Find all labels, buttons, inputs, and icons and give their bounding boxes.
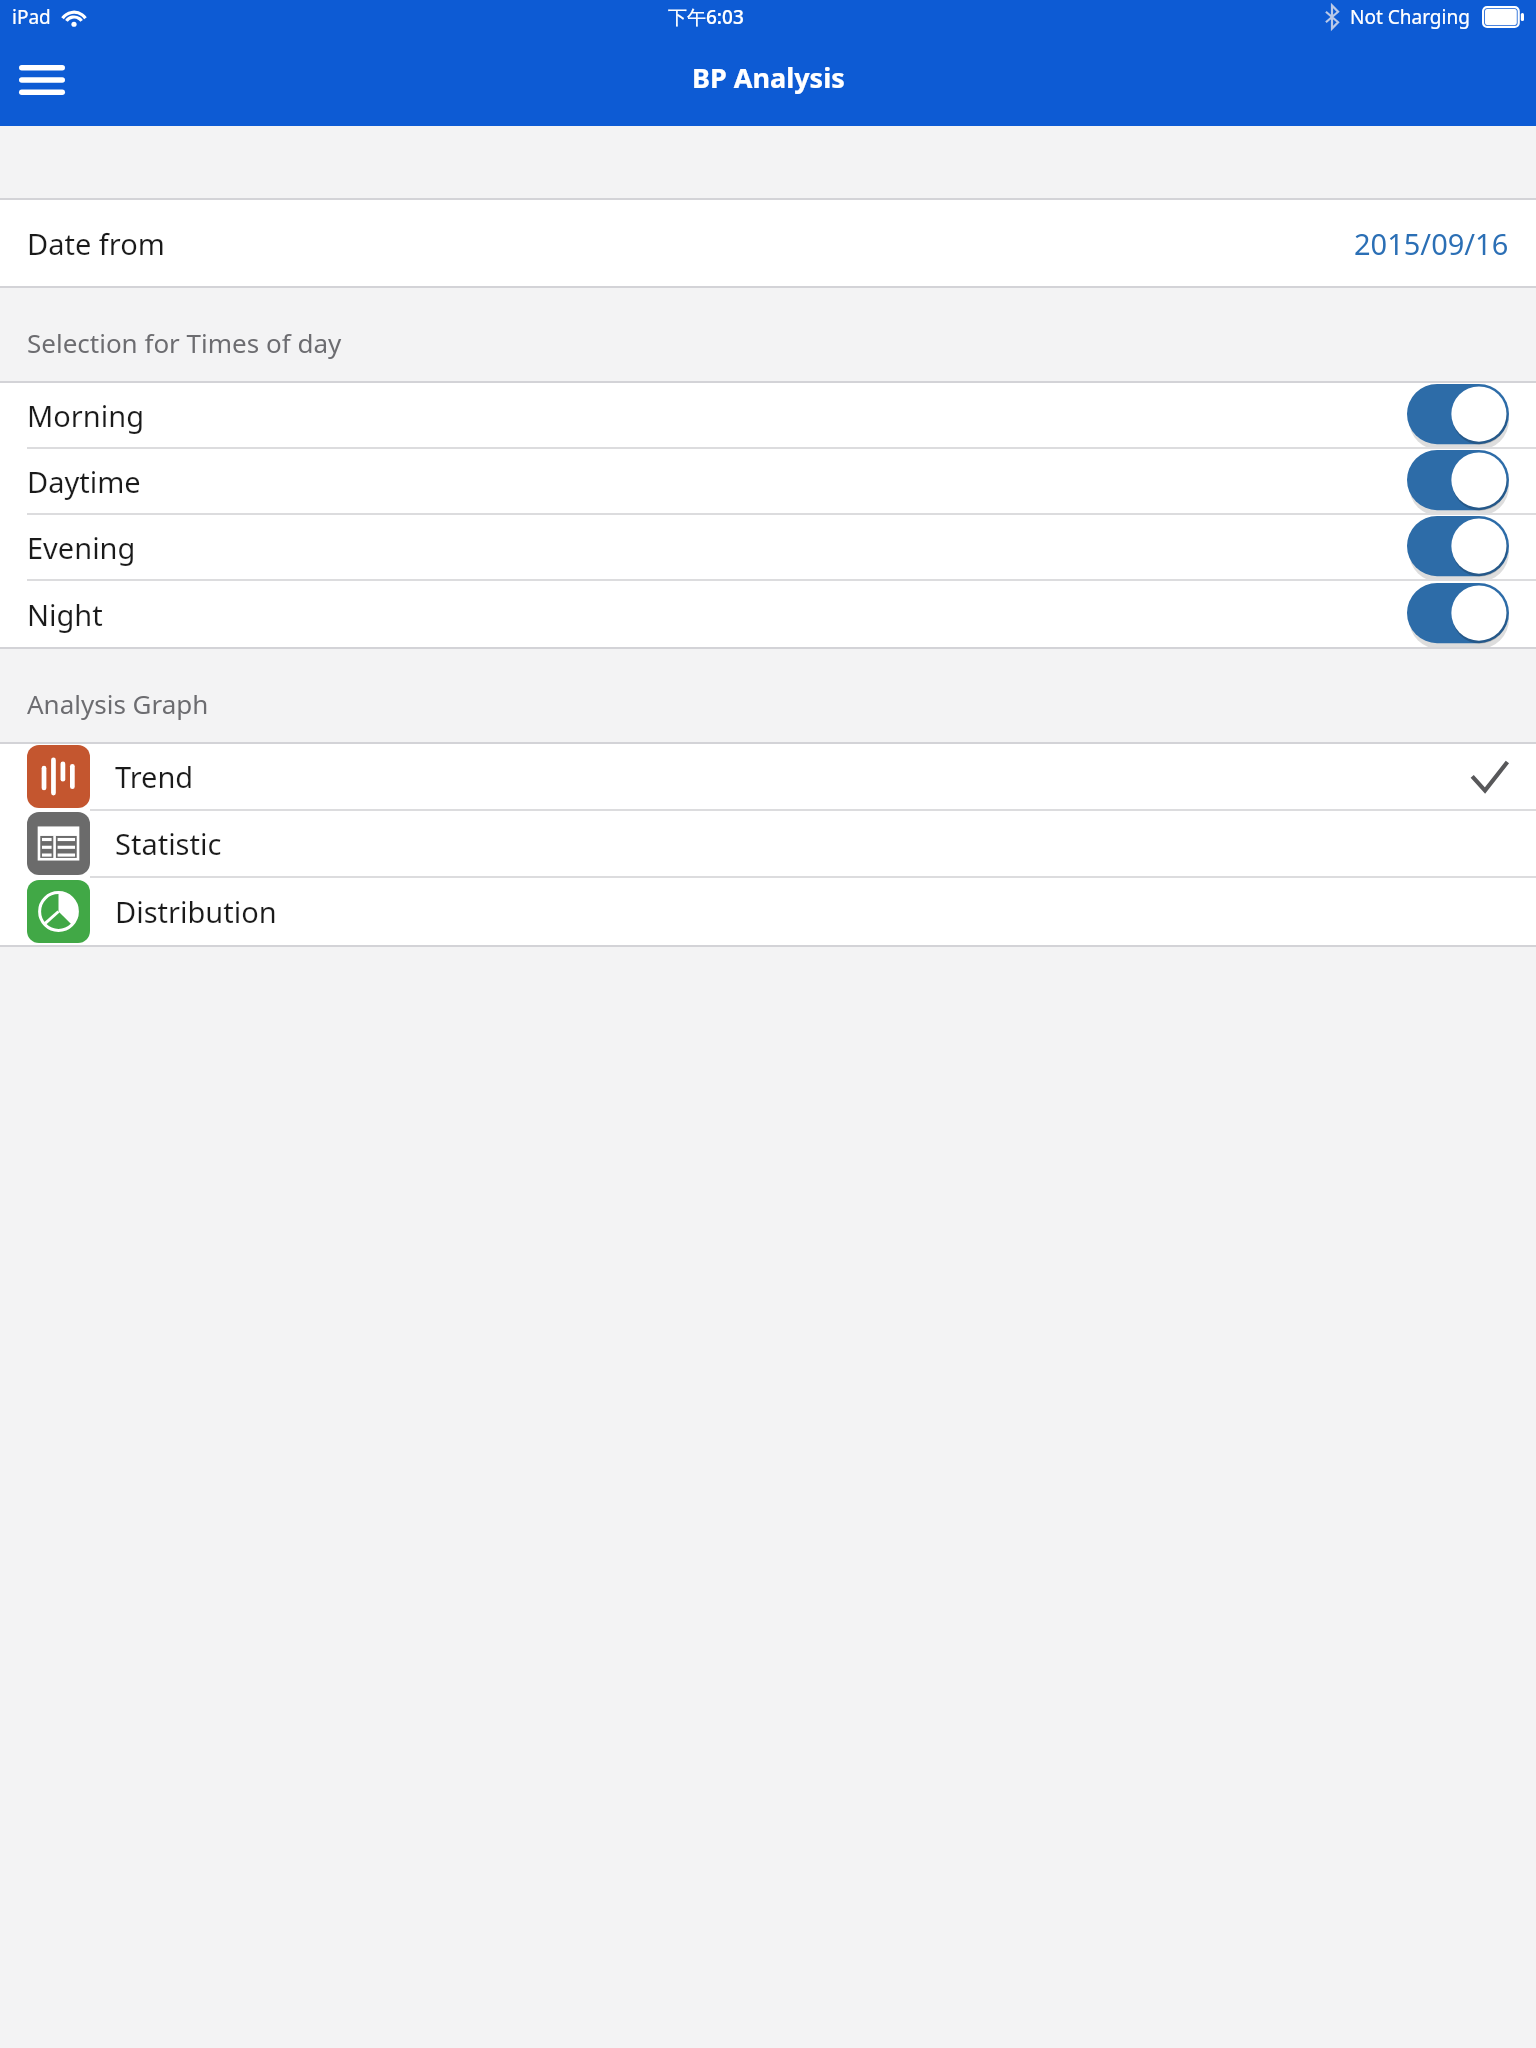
button[interactable]: Night [0, 581, 1536, 647]
button[interactable]: Distribution [0, 878, 1536, 945]
staticText: Analysis Graph [27, 686, 209, 721]
staticText: Selection for Times of day [27, 325, 342, 360]
button[interactable]: Morning [0, 383, 1536, 447]
button[interactable]: Statistic [0, 811, 1536, 876]
staticText: Not Charging [1350, 4, 1470, 30]
staticText: Night [27, 595, 103, 634]
staticText: Evening [27, 528, 136, 567]
staticText: Morning [27, 396, 144, 435]
button[interactable]: Daytime [0, 449, 1536, 513]
staticText: Distribution [115, 892, 277, 931]
button[interactable]: Trend [0, 744, 1536, 809]
staticText: 2015/09/16 [1354, 224, 1509, 263]
button[interactable]: Date from [0, 200, 1536, 286]
staticText: Statistic [115, 824, 222, 863]
staticText: Trend [115, 757, 194, 796]
staticText: Date from [27, 224, 165, 263]
staticText: Daytime [27, 462, 141, 501]
staticText: 下午6:03 [668, 4, 744, 30]
button[interactable]: Menu [14, 56, 70, 104]
button[interactable]: Evening [0, 515, 1536, 579]
staticText: iPad [12, 4, 51, 30]
staticText: BP Analysis [692, 59, 845, 96]
